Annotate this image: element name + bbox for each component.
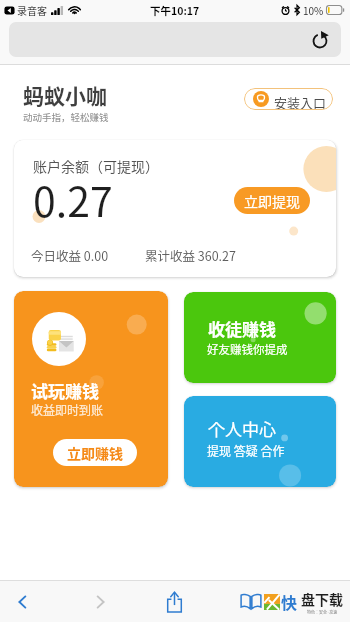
staticText: 收益即时到账	[31, 401, 104, 418]
staticText: 立即提现	[244, 191, 300, 211]
button[interactable]: 试玩赚钱	[14, 291, 168, 487]
staticText: 特色：安全·高速	[307, 609, 338, 615]
staticText: 立即赚钱	[67, 443, 123, 463]
button[interactable]: 收徒赚钱	[184, 292, 336, 383]
staticText: 安装入口	[274, 93, 327, 110]
button[interactable]: 安装入口	[244, 88, 333, 110]
button[interactable]: 立即赚钱	[53, 439, 137, 466]
staticText: 累计收益 360.27	[145, 246, 236, 264]
button[interactable]: 个人中心	[184, 396, 336, 487]
staticText: 0.27	[33, 169, 113, 228]
staticText: 蚂蚁小咖	[23, 80, 107, 110]
staticText: 提现 答疑 合作	[207, 442, 285, 459]
button[interactable]: 立即提现	[234, 187, 310, 214]
staticText: 个人中心	[208, 416, 276, 441]
staticText: 10%	[303, 3, 324, 17]
button[interactable]: Forward	[45, 581, 155, 622]
button[interactable]: 账户余额（可提现）	[14, 140, 336, 277]
button[interactable]: Share	[155, 581, 193, 622]
staticText: 好友赚钱你提成	[207, 341, 288, 358]
staticText: 试玩赚钱	[31, 378, 99, 403]
button[interactable]: Back	[0, 581, 45, 622]
staticText: 账户余额（可提现）	[33, 156, 159, 176]
staticText: 快	[281, 590, 298, 613]
button[interactable]: Refresh	[9, 22, 341, 57]
button[interactable]: Bookmarks	[193, 581, 350, 622]
staticText: 录音客	[17, 3, 47, 17]
staticText: 今日收益 0.00	[31, 246, 109, 264]
button[interactable]: Refresh	[308, 28, 332, 52]
staticText: 动动手指，轻松赚钱	[23, 110, 109, 124]
staticText: 收徒赚钱	[208, 316, 276, 341]
staticText: 下午10:17	[150, 3, 200, 18]
staticText: 盘下载	[301, 589, 343, 609]
